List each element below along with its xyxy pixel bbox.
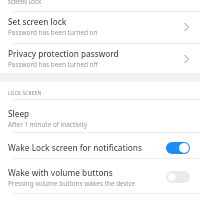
button[interactable]: Wake with volume buttons bbox=[0, 159, 200, 193]
button[interactable]: Set screen lock bbox=[0, 12, 200, 43]
staticText: SCREEN LOCK bbox=[8, 0, 42, 6]
staticText: Privacy protection password bbox=[8, 48, 119, 59]
button[interactable]: Wake Lock screen for notifications bbox=[0, 133, 200, 158]
staticText: Wake Lock screen for notifications bbox=[8, 142, 142, 153]
staticText: Password has been turned on bbox=[8, 28, 98, 37]
staticText: Wake with volume buttons bbox=[8, 167, 113, 178]
staticText: Sleep bbox=[8, 108, 30, 119]
button[interactable]: Sleep bbox=[0, 100, 200, 132]
staticText: After 1 minute of inactivity bbox=[8, 120, 88, 129]
button[interactable] bbox=[166, 142, 190, 154]
staticText: Pressing volume buttons wakes the device bbox=[8, 179, 136, 188]
staticText: Set screen lock bbox=[8, 16, 67, 27]
button[interactable] bbox=[166, 171, 190, 183]
staticText: LOCK SCREEN bbox=[8, 90, 42, 97]
button[interactable]: Privacy protection password bbox=[0, 44, 200, 73]
staticText: Password has been turned off bbox=[8, 60, 98, 69]
